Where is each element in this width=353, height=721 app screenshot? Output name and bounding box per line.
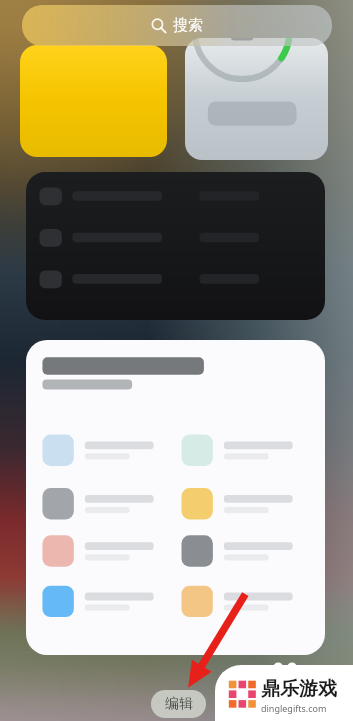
staticText: 鼎乐游戏 xyxy=(261,677,337,701)
button[interactable] xyxy=(185,38,328,160)
button[interactable] xyxy=(26,340,325,655)
staticText: 搜索 xyxy=(173,16,203,35)
button[interactable]: 搜索 xyxy=(22,5,332,46)
other: 鼎乐游戏 dinglegifts.com xyxy=(215,665,353,721)
button[interactable] xyxy=(26,172,325,320)
staticText: 编辑 xyxy=(165,695,193,713)
staticText: dinglegifts.com xyxy=(261,702,327,714)
button[interactable]: 编辑 xyxy=(151,690,206,718)
button[interactable] xyxy=(20,45,167,157)
